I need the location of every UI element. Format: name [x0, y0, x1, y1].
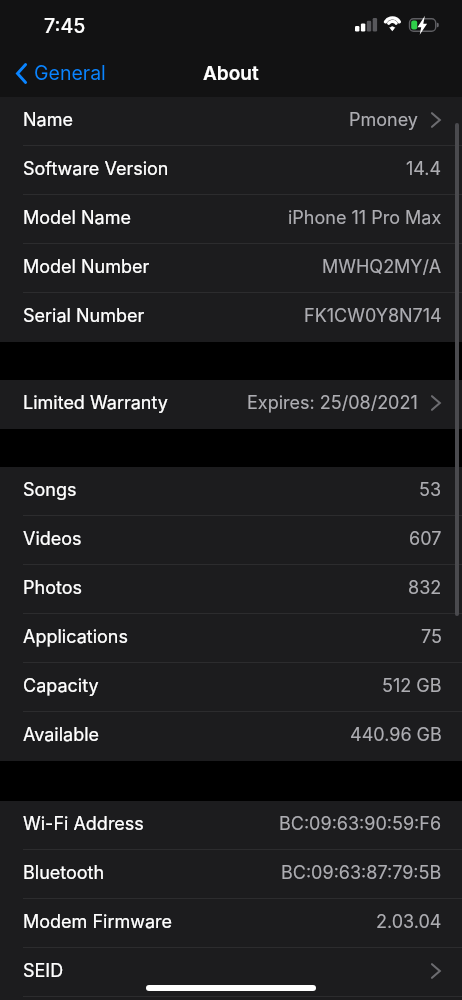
other: Wi-Fi	[383, 17, 402, 33]
button[interactable]: Back to General	[12, 55, 110, 91]
staticText: Model Number	[23, 256, 150, 278]
staticText: 7:45	[44, 14, 86, 38]
staticText: MWHQ2MY/A	[322, 256, 442, 278]
staticText: 512 GB	[382, 675, 442, 697]
staticText: BC:09:63:90:59:F6	[279, 813, 442, 835]
button[interactable]: Bluetooth	[0, 850, 462, 899]
button[interactable]: Serial Number	[0, 293, 462, 342]
staticText: Songs	[23, 479, 77, 501]
button[interactable]: Model Number	[0, 244, 462, 293]
button[interactable]: Model Name	[0, 195, 462, 244]
staticText: Bluetooth	[23, 862, 105, 884]
staticText: Expires: 25/08/2021	[247, 392, 418, 414]
other: Battery charging	[406, 15, 442, 35]
button[interactable]: Available	[0, 712, 462, 761]
staticText: Capacity	[23, 675, 99, 697]
staticText: Videos	[23, 528, 82, 550]
staticText: Modem Firmware	[23, 911, 173, 933]
staticText: 832	[408, 577, 442, 599]
staticText: iPhone 11 Pro Max	[288, 207, 442, 229]
staticText: Photos	[23, 577, 82, 599]
button[interactable]: Songs	[0, 467, 462, 516]
staticText: Serial Number	[23, 305, 145, 327]
button[interactable]: Limited Warranty	[0, 380, 462, 429]
staticText: 607	[409, 528, 442, 550]
staticText: Software Version	[23, 158, 169, 180]
staticText: Applications	[23, 626, 128, 648]
staticText: Name	[23, 109, 73, 131]
staticText: Wi-Fi Address	[23, 813, 144, 835]
staticText: 2.03.04	[376, 911, 442, 933]
button[interactable]: Wi-Fi Address	[0, 801, 462, 850]
button[interactable]: Photos	[0, 565, 462, 614]
staticText: Model Name	[23, 207, 131, 229]
staticText: 440.96 GB	[350, 724, 442, 746]
button[interactable]: Videos	[0, 516, 462, 565]
staticText: 14.4	[406, 158, 442, 180]
button[interactable]: Modem Firmware	[0, 899, 462, 948]
button[interactable]: Capacity	[0, 663, 462, 712]
button[interactable]: Applications	[0, 614, 462, 663]
staticText: About	[203, 62, 259, 85]
button[interactable]: Software Version	[0, 146, 462, 195]
staticText: SEID	[23, 960, 64, 982]
staticText: Available	[23, 724, 100, 746]
staticText: Pmoney	[349, 109, 418, 131]
staticText: General	[34, 61, 106, 85]
staticText: 53	[419, 479, 442, 501]
staticText: Limited Warranty	[23, 392, 168, 414]
button[interactable]: Name	[0, 97, 462, 146]
staticText: BC:09:63:87:79:5B	[281, 862, 442, 884]
staticText: FK1CW0Y8N714	[304, 305, 442, 327]
other: Cellular signal	[355, 18, 377, 32]
staticText: 75	[421, 626, 442, 648]
button[interactable]: SEID	[0, 948, 462, 997]
